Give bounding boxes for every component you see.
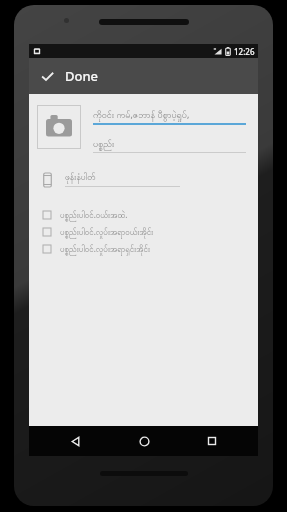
staticText: 12:26 (234, 46, 255, 57)
button[interactable]: ပစ္စည်း (93, 136, 246, 153)
staticText: ပစ္စည်းပါဝင်.ဝယ်းအထဲ. (60, 209, 128, 221)
button[interactable]: ဖုန်းနံပါတ် (65, 170, 180, 187)
button[interactable]: ပစ္စည်းပါဝင်.လှုပ်းအရာဝယ်းအိုင်း (29, 223, 258, 240)
button[interactable]: ပစ္စည်းပါဝင်.ဝယ်းအထဲ. (29, 206, 258, 223)
button[interactable]: Home (121, 426, 167, 456)
staticText: Done (65, 67, 99, 85)
staticText: ပစ္စည်းပါဝင်.လှုပ်းအရာရှင်းအိုင်း (60, 243, 151, 255)
button[interactable]: Done (29, 58, 258, 94)
button[interactable]: ပစ္စည်းပါဝင်.လှုပ်းအရာရှင်းအိုင်း (29, 240, 258, 257)
other: Done (40, 69, 55, 84)
staticText: ပစ္စည်းပါဝင်.လှုပ်းအရာဝယ်းအိုင်း (60, 226, 154, 238)
button[interactable]: Add photo (37, 105, 81, 149)
button[interactable]: ကိုဝင်း ကမ်,ဇဘာန် ပီစွာပဲ့ရှုပ်, (93, 107, 246, 125)
staticText: ဖုန်းနံပါတ် (65, 172, 96, 185)
staticText: ပစ္စည်း (93, 138, 115, 151)
button[interactable]: Recent apps (189, 426, 235, 456)
button[interactable]: Back (52, 426, 98, 456)
staticText: ကိုဝင်း ကမ်,ဇဘာန် ပီစွာပဲ့ရှုပ်, (93, 108, 190, 122)
